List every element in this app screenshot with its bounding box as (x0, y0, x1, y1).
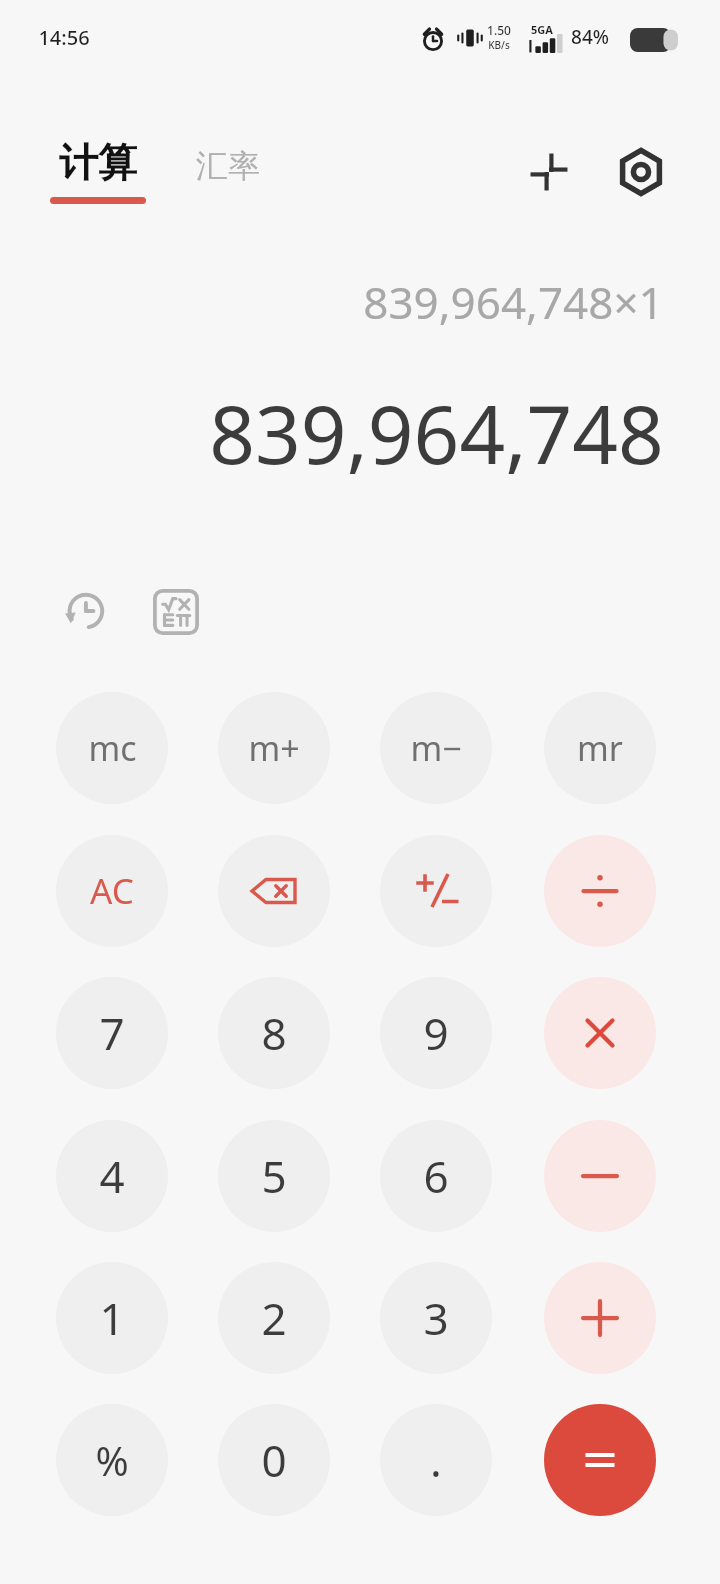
staticText: m− (410, 725, 462, 771)
button[interactable]: Plus minus (380, 835, 492, 947)
staticText: 8 (261, 1003, 287, 1063)
button[interactable]: Add (515, 138, 583, 206)
button[interactable]: 4 (56, 1120, 168, 1232)
staticText: 0 (261, 1430, 287, 1490)
button[interactable]: Backspace (218, 835, 330, 947)
button[interactable]: 7 (56, 977, 168, 1089)
button[interactable]: . (380, 1404, 492, 1516)
staticText: KB/s (488, 38, 510, 52)
button[interactable]: mc (56, 692, 168, 804)
button[interactable]: mr (544, 692, 656, 804)
staticText: mc (88, 725, 137, 771)
button[interactable]: 1 (56, 1262, 168, 1374)
button[interactable]: Scientific mode (144, 580, 208, 644)
staticText: 7 (99, 1003, 125, 1063)
button[interactable]: 0 (218, 1404, 330, 1516)
staticText: 6 (423, 1146, 449, 1206)
staticText: mr (577, 725, 623, 771)
button[interactable]: 3 (380, 1262, 492, 1374)
button[interactable]: Multiply (544, 977, 656, 1089)
staticText: 839,964,748×1 (363, 272, 664, 332)
staticText: 9 (423, 1003, 449, 1063)
staticText: 84% (571, 24, 609, 50)
staticText: 2 (261, 1288, 287, 1348)
staticText: 1 (99, 1288, 125, 1348)
button[interactable]: m+ (218, 692, 330, 804)
button[interactable]: Settings (607, 138, 675, 206)
staticText: 4 (99, 1146, 125, 1206)
button[interactable]: 2 (218, 1262, 330, 1374)
staticText: % (95, 1433, 129, 1487)
staticText: 14:56 (38, 24, 90, 51)
button[interactable]: 汇率 (196, 146, 260, 186)
button[interactable]: History (52, 580, 116, 644)
staticText: 5GA (531, 22, 553, 37)
button[interactable]: 计算 (50, 138, 146, 204)
staticText: 计算 (59, 138, 137, 187)
button[interactable]: % (56, 1404, 168, 1516)
staticText: . (430, 1430, 442, 1490)
button[interactable]: Plus (544, 1262, 656, 1374)
button[interactable]: 6 (380, 1120, 492, 1232)
staticText: m+ (248, 725, 300, 771)
staticText: AC (90, 867, 134, 915)
staticText: 5 (261, 1146, 287, 1206)
staticText: 839,964,748 (209, 378, 664, 487)
staticText: 汇率 (196, 146, 260, 186)
button[interactable]: Divide (544, 835, 656, 947)
button[interactable]: 5 (218, 1120, 330, 1232)
button[interactable]: Equals (544, 1404, 656, 1516)
button[interactable]: AC (56, 835, 168, 947)
staticText: 1.50 (487, 22, 511, 38)
button[interactable]: 8 (218, 977, 330, 1089)
staticText: 3 (423, 1288, 449, 1348)
button[interactable]: 9 (380, 977, 492, 1089)
button[interactable]: m− (380, 692, 492, 804)
button[interactable]: Minus (544, 1120, 656, 1232)
